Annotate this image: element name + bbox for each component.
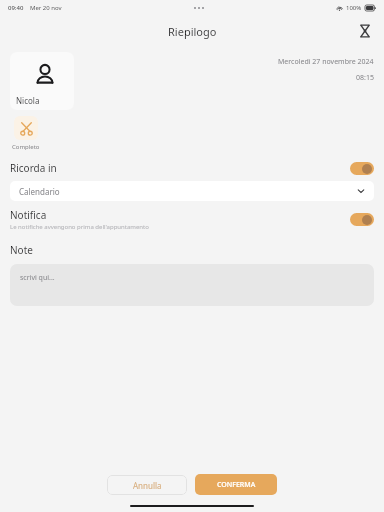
button[interactable]: Completo: [14, 116, 38, 140]
staticText: Nicola: [16, 95, 40, 106]
staticText: Mercoledì 27 novembre 2024: [278, 57, 374, 67]
button[interactable]: Toggle: [350, 162, 374, 175]
staticText: scrivi qui...: [20, 273, 55, 283]
staticText: Ricorda in: [10, 161, 57, 175]
button[interactable]: scrivi qui...: [10, 264, 374, 306]
staticText: 100%: [346, 4, 362, 12]
button[interactable]: Annulla: [107, 475, 187, 495]
staticText: 09:40: [8, 4, 24, 12]
button[interactable]: CONFERMA: [195, 474, 277, 495]
staticText: CONFERMA: [217, 480, 256, 490]
staticText: Le notifiche avvengono prima dell'appunt…: [10, 223, 149, 231]
staticText: Riepilogo: [168, 24, 217, 39]
button[interactable]: Timer: [354, 20, 376, 42]
staticText: Notifica: [10, 208, 47, 222]
button[interactable]: Nicola: [10, 52, 74, 110]
staticText: Mer 20 nov: [30, 4, 62, 12]
staticText: Note: [10, 243, 33, 257]
staticText: Annulla: [133, 480, 162, 491]
staticText: Calendario: [19, 186, 60, 197]
staticText: 08:15: [356, 73, 374, 83]
staticText: Completo: [12, 143, 40, 151]
button[interactable]: Calendario: [10, 181, 374, 201]
button[interactable]: Toggle: [350, 213, 374, 226]
